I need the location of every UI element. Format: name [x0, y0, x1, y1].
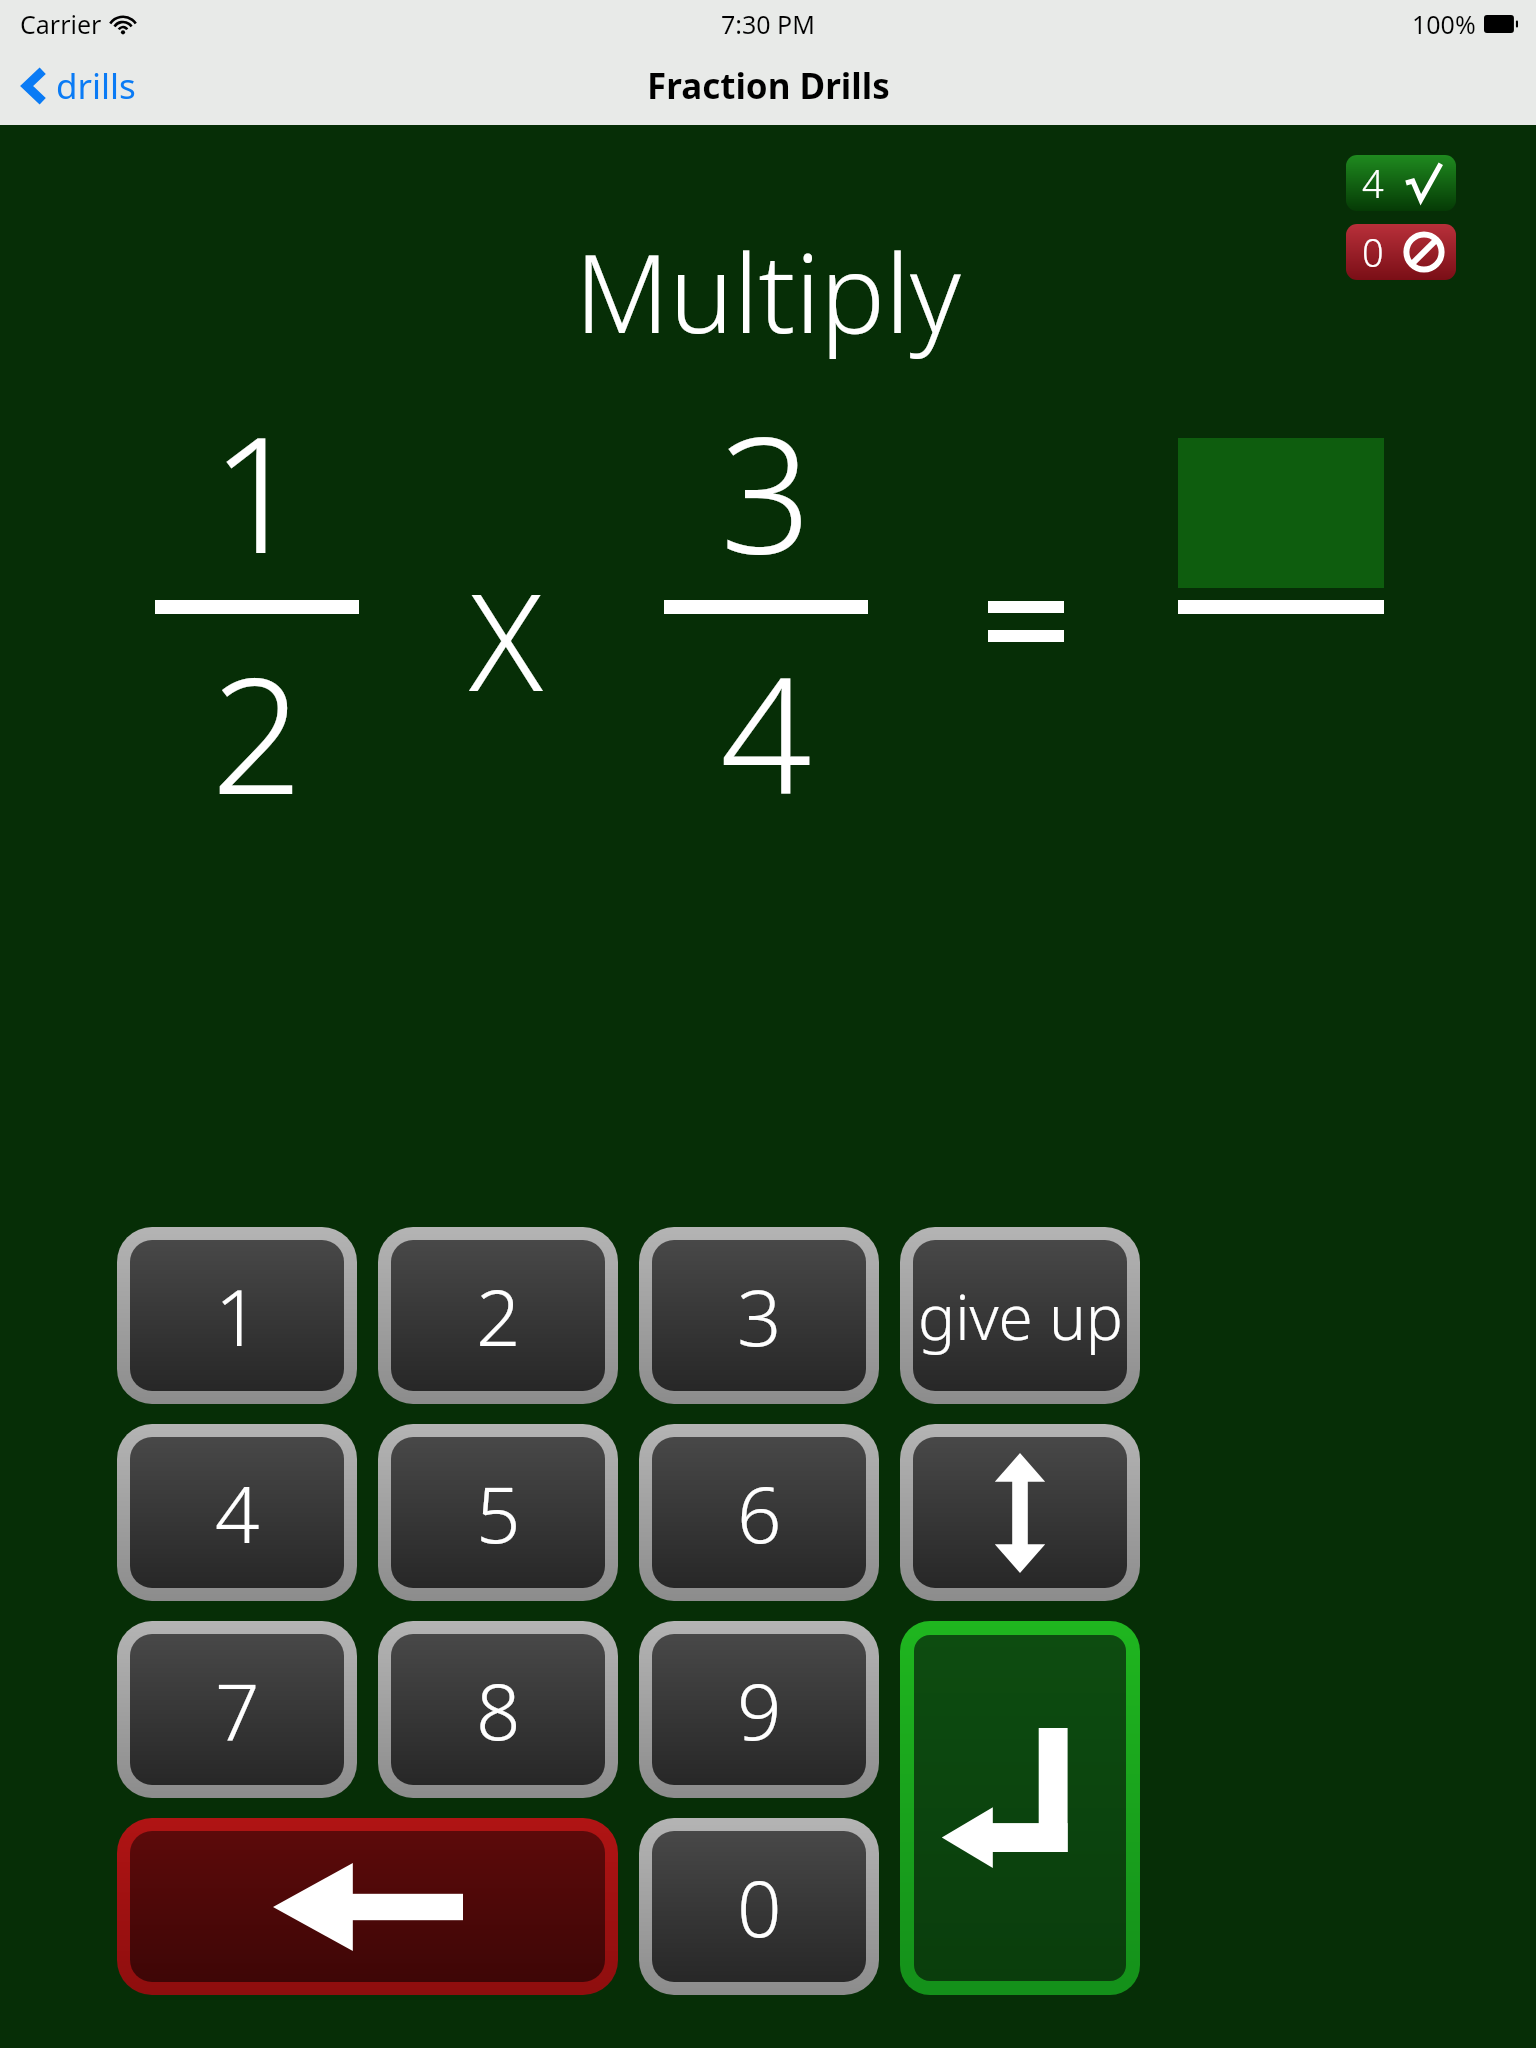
staticText: 8 [476, 1657, 521, 1763]
button[interactable]: 9 [639, 1621, 879, 1798]
staticText: 3 [720, 382, 812, 600]
button[interactable]: 7 [117, 1621, 357, 1798]
staticText: 2 [476, 1263, 521, 1369]
button[interactable]: Backspace [117, 1818, 618, 1995]
staticText: 4 [215, 1460, 260, 1566]
button[interactable]: Wrong count [1346, 224, 1456, 280]
staticText: Multiply [575, 218, 961, 365]
button[interactable]: drills [14, 54, 146, 118]
staticText: Fraction Drills [647, 62, 890, 110]
staticText: give up [918, 1274, 1123, 1358]
staticText: 2 [211, 623, 303, 841]
staticText: 1 [215, 1263, 260, 1369]
button[interactable]: 8 [378, 1621, 618, 1798]
button[interactable]: 6 [639, 1424, 879, 1601]
button[interactable]: 0 [639, 1818, 879, 1995]
staticText: drills [56, 62, 136, 110]
staticText: 9 [737, 1657, 782, 1763]
staticText: 100% [1412, 7, 1476, 41]
button[interactable]: Enter [900, 1621, 1140, 1995]
staticText: 1 [211, 382, 303, 600]
button[interactable]: Correct count [1346, 155, 1456, 211]
staticText: 4 [720, 623, 812, 841]
staticText: 0 [1362, 226, 1384, 278]
button[interactable]: 2 [378, 1227, 618, 1404]
button[interactable]: 1 [117, 1227, 357, 1404]
button[interactable]: Swap [900, 1424, 1140, 1601]
staticText: X [469, 547, 543, 731]
staticText: 7:30 PM [721, 7, 815, 41]
staticText: 7 [215, 1657, 260, 1763]
staticText: 5 [476, 1460, 521, 1566]
staticText: 0 [737, 1854, 782, 1960]
staticText: Carrier [20, 7, 102, 41]
staticText: 6 [737, 1460, 782, 1566]
button[interactable]: 4 [117, 1424, 357, 1601]
staticText: 4 [1362, 157, 1384, 209]
button[interactable]: 5 [378, 1424, 618, 1601]
staticText: 3 [737, 1263, 782, 1369]
button[interactable]: 3 [639, 1227, 879, 1404]
button[interactable]: give up [900, 1227, 1140, 1404]
